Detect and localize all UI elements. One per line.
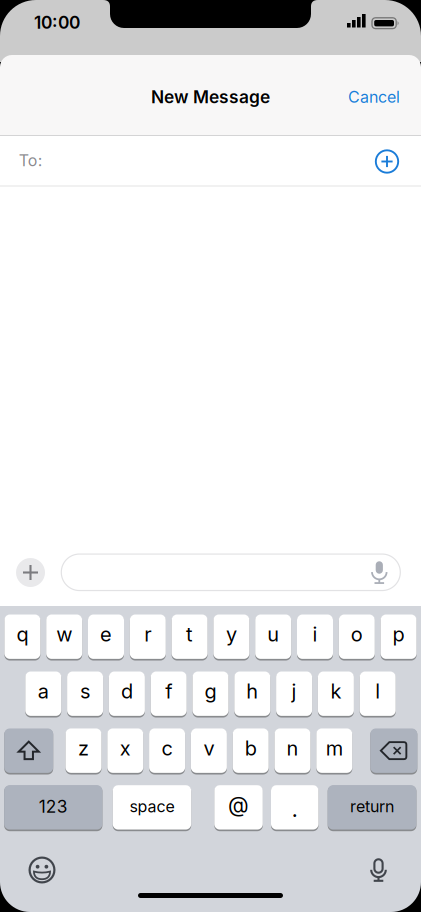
staticText: To: [19,151,43,170]
button[interactable]: h [234,671,270,716]
staticText: space [129,797,174,816]
staticText: Cancel [348,88,400,106]
staticText: c [162,736,173,760]
staticText: k [330,679,341,703]
button[interactable]: . [271,785,318,830]
staticText: return [350,797,394,816]
button[interactable]: u [255,614,291,659]
button[interactable]: b [233,728,269,773]
button[interactable]: @ [214,785,263,830]
staticText: z [78,736,89,760]
staticText: d [121,679,133,703]
staticText: p [393,622,405,646]
staticText: 10:00 [34,12,80,33]
button[interactable]: 123 [4,785,102,830]
staticText: u [267,622,279,646]
staticText: y [226,622,237,646]
staticText: 123 [39,796,68,816]
button[interactable]: v [191,728,227,773]
button[interactable]: j [276,671,312,716]
button[interactable]: y [213,614,249,659]
button[interactable]: x [107,728,143,773]
button[interactable]: q [4,614,40,659]
staticText: i [312,622,317,646]
button[interactable]: Attach [15,557,45,587]
staticText: q [16,622,28,646]
button[interactable]: n [274,728,310,773]
staticText: New Message [151,87,270,107]
staticText: j [292,679,297,703]
button[interactable]: Emoji [28,856,56,884]
staticText: w [56,622,72,646]
staticText: x [120,736,131,760]
staticText: @ [228,792,249,817]
button[interactable]: Dictation [366,858,390,881]
button[interactable]: r [130,614,166,659]
staticText: h [246,679,258,703]
button[interactable]: k [318,671,354,716]
staticText: g [204,679,216,703]
staticText: a [38,679,49,703]
button[interactable]: m [316,728,352,773]
staticText: l [375,679,380,703]
button[interactable]: z [65,728,101,773]
button[interactable]: Delete [370,728,417,773]
button[interactable]: Shift [4,728,53,773]
button[interactable]: f [151,671,187,716]
staticText: n [286,736,298,760]
button[interactable]: Cancel [348,88,400,106]
button[interactable]: l [360,671,396,716]
button[interactable]: p [381,614,417,659]
staticText: b [245,736,257,760]
staticText: e [100,622,112,646]
staticText: s [80,679,90,703]
button[interactable]: space [113,785,191,830]
button[interactable]: o [339,614,375,659]
button[interactable]: Dictate [367,561,391,584]
button[interactable]: t [172,614,208,659]
button[interactable]: a [25,671,61,716]
staticText: r [144,622,151,646]
button[interactable]: Add Contact [374,148,400,174]
button[interactable]: c [149,728,185,773]
button[interactable]: g [192,671,228,716]
staticText: o [351,622,363,646]
staticText: v [203,736,214,760]
staticText: f [165,679,172,703]
staticText: . [292,797,298,822]
button[interactable]: w [46,614,82,659]
button[interactable]: return [328,785,416,830]
button[interactable]: i [297,614,333,659]
staticText: t [186,622,193,646]
staticText: m [326,736,343,760]
button[interactable]: s [67,671,103,716]
button[interactable]: e [88,614,124,659]
button[interactable]: d [109,671,145,716]
